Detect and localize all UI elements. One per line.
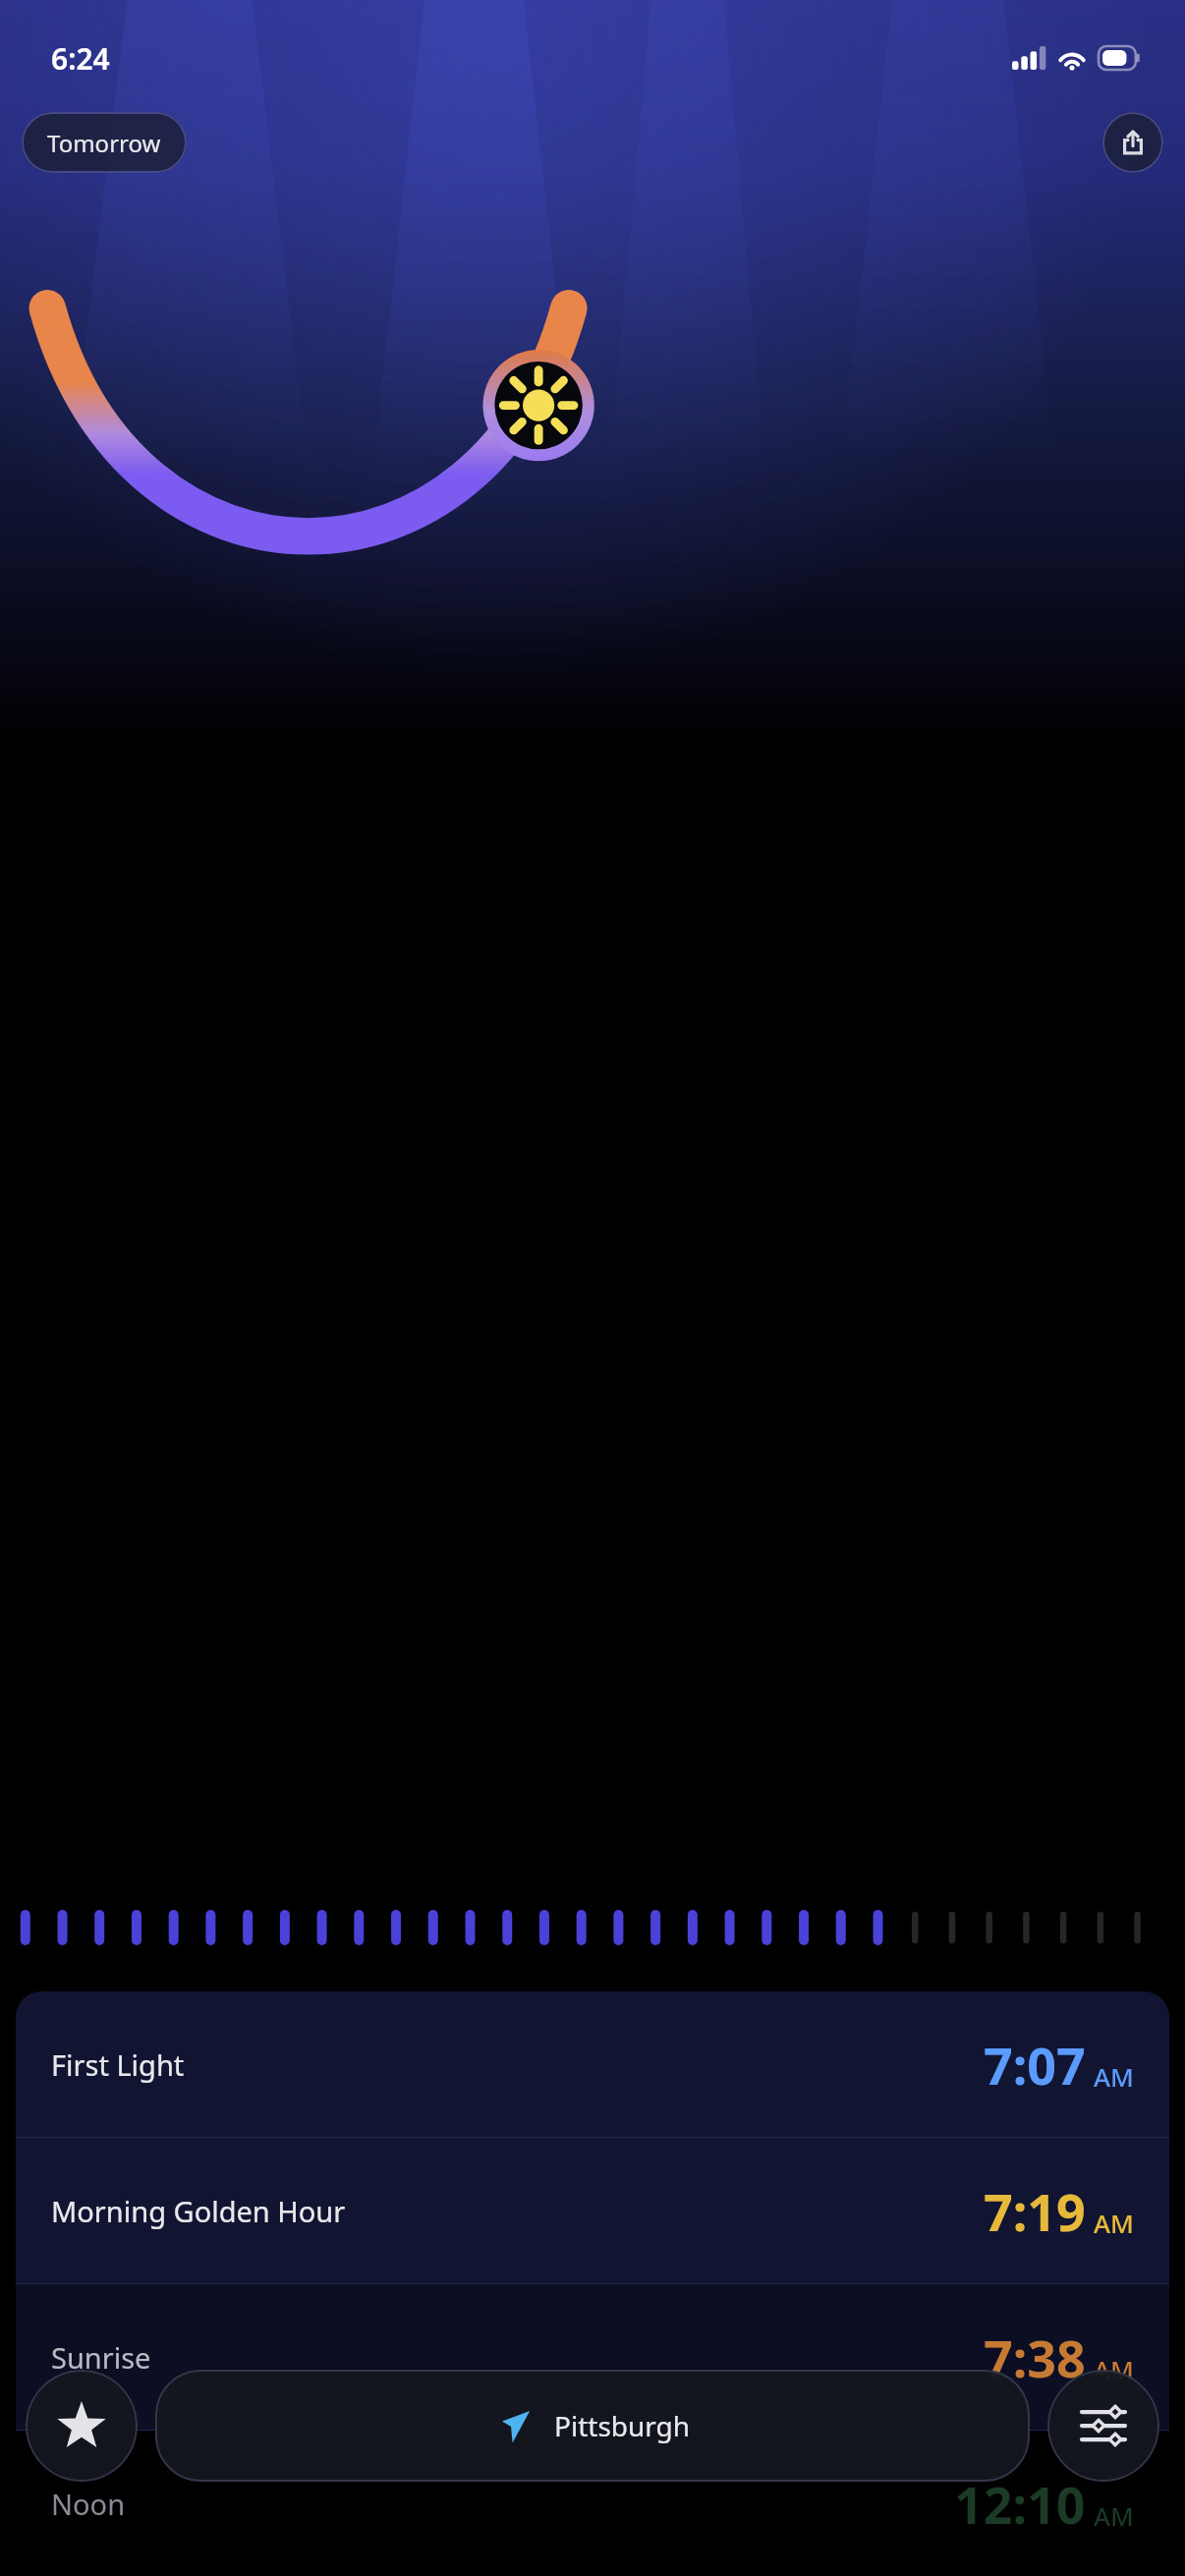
staticText: 7:19	[984, 2176, 1086, 2246]
staticText: AM	[1094, 2352, 1134, 2386]
staticText: Tomorrow	[47, 127, 161, 159]
button[interactable]: Tomorrow	[22, 112, 187, 173]
staticText: Pittsburgh	[554, 2407, 691, 2444]
staticText: 7:07	[984, 2030, 1086, 2100]
button[interactable]: Morning Golden Hour	[16, 2138, 1169, 2283]
staticText: Noon	[51, 2485, 126, 2523]
button[interactable]: Sunrise	[16, 2284, 1169, 2430]
staticText: AM	[1094, 2206, 1134, 2240]
staticText: Morning Golden Hour	[51, 2192, 346, 2230]
button[interactable]: Noon	[16, 2431, 1169, 2576]
staticText: 7:38	[984, 2323, 1086, 2392]
staticText: 6:24	[51, 38, 110, 79]
staticText: AM	[1094, 2059, 1134, 2094]
button[interactable]: Favorites	[26, 2370, 138, 2482]
button[interactable]: Share	[1102, 112, 1163, 173]
button[interactable]: First Light	[16, 1991, 1169, 2137]
button[interactable]: Pittsburgh	[155, 2370, 1030, 2482]
staticText: 12:10	[954, 2469, 1086, 2539]
staticText: AM	[1094, 2498, 1134, 2533]
staticText: Sunrise	[51, 2338, 151, 2377]
button[interactable]: Settings	[1047, 2370, 1159, 2482]
staticText: First Light	[51, 2045, 185, 2084]
